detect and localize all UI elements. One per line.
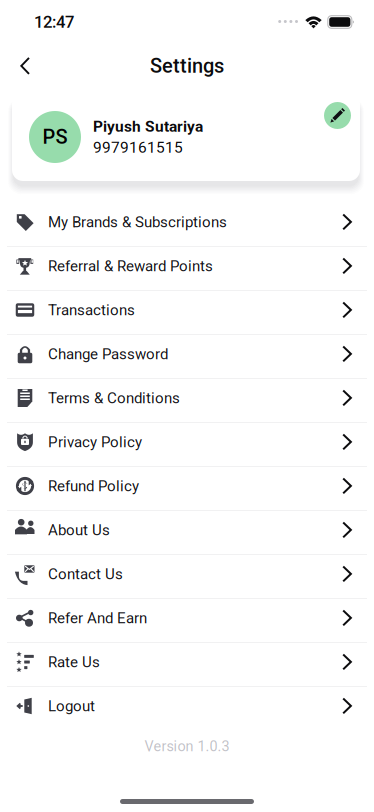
staticText: Rate Us xyxy=(48,653,100,671)
staticText: Logout xyxy=(48,697,95,715)
button[interactable]: Referral & Reward Points xyxy=(0,247,374,290)
staticText: PS xyxy=(42,125,67,149)
staticText: Transactions xyxy=(48,301,135,319)
button[interactable]: Back xyxy=(0,44,42,88)
button[interactable]: About Us xyxy=(0,511,374,554)
button[interactable]: Refer And Earn xyxy=(0,599,374,642)
button[interactable]: Privacy Policy xyxy=(0,423,374,466)
button[interactable]: Transactions xyxy=(0,291,374,334)
staticText: Privacy Policy xyxy=(48,433,142,451)
button[interactable]: Logout xyxy=(0,687,374,730)
staticText: 9979161515 xyxy=(93,138,183,157)
staticText: Contact Us xyxy=(48,565,123,583)
staticText: Settings xyxy=(150,54,224,78)
staticText: About Us xyxy=(48,521,110,539)
staticText: Version 1.0.3 xyxy=(144,738,229,755)
staticText: Referral & Reward Points xyxy=(48,257,213,275)
staticText: Refer And Earn xyxy=(48,609,147,627)
button[interactable]: Terms & Conditions xyxy=(0,379,374,422)
button[interactable]: Contact Us xyxy=(0,555,374,598)
button[interactable]: Refund Policy xyxy=(0,467,374,510)
button[interactable]: Change Password xyxy=(0,335,374,378)
staticText: Piyush Sutariya xyxy=(93,117,203,135)
staticText: Refund Policy xyxy=(48,477,139,495)
staticText: Terms & Conditions xyxy=(48,389,180,407)
button[interactable]: Rate Us xyxy=(0,643,374,686)
staticText: My Brands & Subscriptions xyxy=(48,213,227,231)
button[interactable]: My Brands & Subscriptions xyxy=(0,203,374,246)
button[interactable]: Edit profile xyxy=(324,102,351,129)
staticText: 12:47 xyxy=(34,12,74,32)
staticText: Change Password xyxy=(48,345,168,363)
